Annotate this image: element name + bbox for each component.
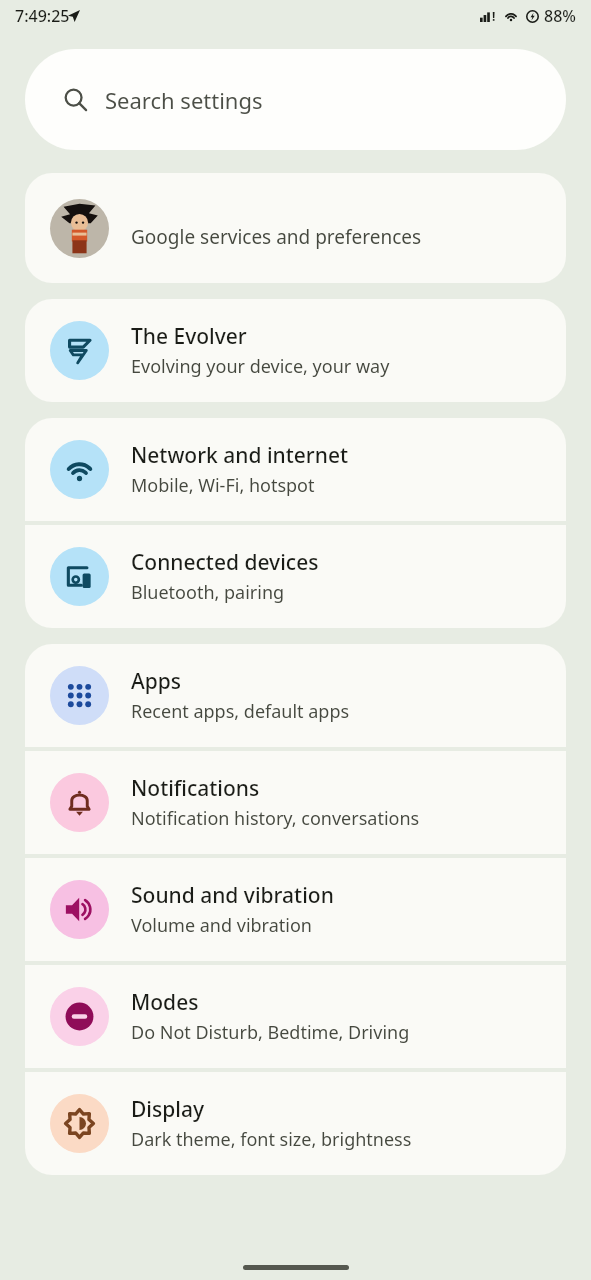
- staticText: Modes: [131, 988, 199, 1017]
- staticText: Evolving your device, your way: [131, 354, 390, 379]
- staticText: Recent apps, default apps: [131, 699, 350, 724]
- button[interactable]: Search settings: [25, 49, 566, 150]
- staticText: Network and internet: [131, 441, 348, 470]
- staticText: 88%: [544, 5, 576, 27]
- staticText: 7:49:25: [15, 5, 70, 27]
- button[interactable]: Connected devices: [25, 525, 566, 628]
- button[interactable]: Sound and vibration: [25, 858, 566, 961]
- staticText: Apps: [131, 667, 182, 696]
- button[interactable]: Google services and preferences: [25, 173, 566, 283]
- button[interactable]: Notifications: [25, 751, 566, 854]
- button[interactable]: Display: [25, 1072, 566, 1175]
- staticText: Display: [131, 1095, 205, 1124]
- button[interactable]: Modes: [25, 965, 566, 1068]
- staticText: Mobile, Wi-Fi, hotspot: [131, 473, 315, 498]
- button[interactable]: Apps: [25, 644, 566, 747]
- staticText: Do Not Disturb, Bedtime, Driving: [131, 1020, 410, 1045]
- staticText: Search settings: [105, 85, 263, 115]
- staticText: Dark theme, font size, brightness: [131, 1127, 412, 1152]
- staticText: !: [492, 8, 496, 24]
- button[interactable]: Network and internet: [25, 418, 566, 521]
- button[interactable]: The Evolver: [25, 299, 566, 402]
- staticText: Google services and preferences: [131, 224, 422, 250]
- staticText: The Evolver: [131, 322, 247, 351]
- staticText: Volume and vibration: [131, 913, 312, 938]
- staticText: Notifications: [131, 774, 260, 803]
- staticText: Bluetooth, pairing: [131, 580, 285, 605]
- staticText: Sound and vibration: [131, 881, 334, 910]
- staticText: Notification history, conversations: [131, 806, 420, 831]
- staticText: Connected devices: [131, 548, 319, 577]
